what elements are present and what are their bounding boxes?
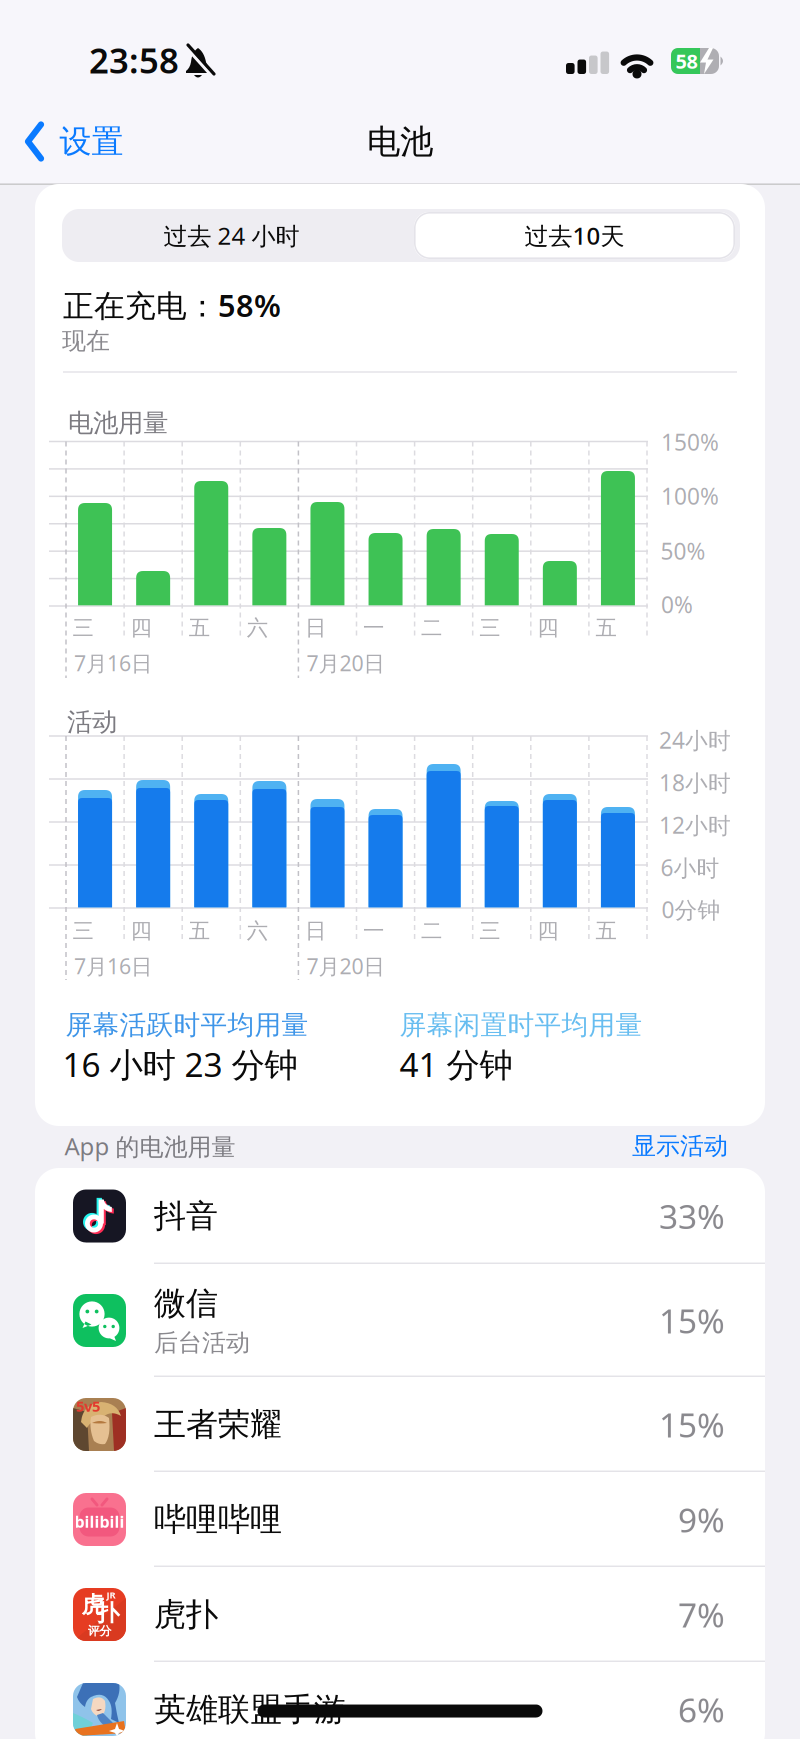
staticText: App 的电池用量 bbox=[64, 1130, 235, 1162]
button[interactable]: 5v5 bbox=[35, 1377, 765, 1472]
staticText: 一 bbox=[363, 615, 384, 641]
staticText: 日 bbox=[305, 615, 326, 641]
staticText: 屏幕闲置时平均用量 bbox=[399, 1009, 642, 1041]
staticText: 15% bbox=[659, 1298, 725, 1343]
staticText: 7月16日 bbox=[74, 952, 152, 980]
staticText: 58 bbox=[675, 48, 697, 74]
staticText: JR bbox=[106, 1589, 115, 1601]
staticText: 虎扑 bbox=[154, 1595, 218, 1634]
staticText: 设置 bbox=[59, 122, 123, 161]
staticText: 7月20日 bbox=[306, 952, 384, 980]
button[interactable]: 虎 bbox=[35, 1567, 765, 1662]
staticText: 过去10天 bbox=[524, 220, 624, 251]
staticText: 四 bbox=[131, 918, 152, 944]
staticText: 五 bbox=[595, 918, 616, 944]
staticText: 24小时 bbox=[659, 725, 731, 755]
button[interactable]: 微信 bbox=[35, 1264, 765, 1377]
staticText: 扑 bbox=[96, 1599, 119, 1627]
staticText: 12小时 bbox=[659, 810, 731, 840]
staticText: 一 bbox=[363, 918, 384, 944]
staticText: 50% bbox=[660, 536, 705, 566]
staticText: 二 bbox=[421, 918, 442, 944]
staticText: 抖音 bbox=[154, 1196, 218, 1236]
staticText: 四 bbox=[537, 615, 558, 641]
staticText: 6小时 bbox=[660, 852, 719, 882]
staticText: 三 bbox=[479, 918, 500, 944]
staticText: 电池 bbox=[367, 121, 433, 162]
staticText: 五 bbox=[595, 615, 616, 641]
staticText: 41 分钟 bbox=[399, 1042, 512, 1086]
button[interactable]: 过去10天 bbox=[405, 209, 744, 262]
staticText: 显示活动 bbox=[632, 1131, 728, 1161]
staticText: bilibili bbox=[74, 1511, 124, 1532]
staticText: 18小时 bbox=[659, 767, 731, 797]
staticText: 9% bbox=[678, 1497, 725, 1542]
staticText: 英雄联盟手游 bbox=[154, 1690, 346, 1729]
button[interactable]: 显示活动 bbox=[610, 1126, 750, 1166]
staticText: 7% bbox=[678, 1592, 725, 1637]
staticText: 23:58 bbox=[89, 37, 179, 83]
staticText: 四 bbox=[131, 615, 152, 641]
staticText: 现在 bbox=[62, 326, 110, 356]
staticText: 后台活动 bbox=[154, 1328, 250, 1357]
staticText: 7月20日 bbox=[306, 649, 384, 677]
staticText: 16 小时 23 分钟 bbox=[62, 1042, 297, 1086]
button[interactable]: 设置 bbox=[24, 113, 123, 169]
button[interactable]: 过去 24 小时 bbox=[62, 209, 401, 262]
staticText: 六 bbox=[247, 918, 268, 944]
staticText: 三 bbox=[72, 918, 93, 944]
staticText: 0% bbox=[661, 589, 693, 619]
staticText: 屏幕活跃时平均用量 bbox=[65, 1009, 308, 1041]
button[interactable]: 英雄联盟手游 bbox=[35, 1662, 765, 1739]
staticText: 三 bbox=[72, 615, 93, 641]
staticText: 活动 bbox=[67, 706, 117, 737]
staticText: 王者荣耀 bbox=[154, 1405, 282, 1444]
staticText: 微信 bbox=[154, 1284, 218, 1323]
staticText: 7月16日 bbox=[74, 649, 152, 677]
staticText: 三 bbox=[479, 615, 500, 641]
staticText: 150% bbox=[661, 427, 719, 457]
staticText: 15% bbox=[659, 1402, 725, 1447]
button[interactable]: bilibili bbox=[35, 1472, 765, 1567]
staticText: 四 bbox=[537, 918, 558, 944]
staticText: 六 bbox=[247, 615, 268, 641]
staticText: 33% bbox=[659, 1194, 725, 1238]
button[interactable]: 抖音 bbox=[35, 1168, 765, 1264]
staticText: 哔哩哔哩 bbox=[154, 1500, 282, 1539]
staticText: 正在充电：58% bbox=[63, 285, 281, 325]
staticText: 二 bbox=[421, 615, 442, 641]
staticText: 过去 24 小时 bbox=[163, 220, 299, 251]
staticText: 日 bbox=[305, 918, 326, 944]
staticText: 0分钟 bbox=[661, 894, 720, 924]
staticText: 6% bbox=[678, 1687, 725, 1732]
staticText: 评分 bbox=[87, 1624, 111, 1638]
staticText: 虎 bbox=[81, 1591, 104, 1619]
staticText: 五 bbox=[189, 615, 210, 641]
staticText: 100% bbox=[661, 481, 719, 511]
staticText: 五 bbox=[189, 918, 210, 944]
staticText: 电池用量 bbox=[68, 407, 168, 438]
staticText: 5v5 bbox=[76, 1396, 100, 1416]
